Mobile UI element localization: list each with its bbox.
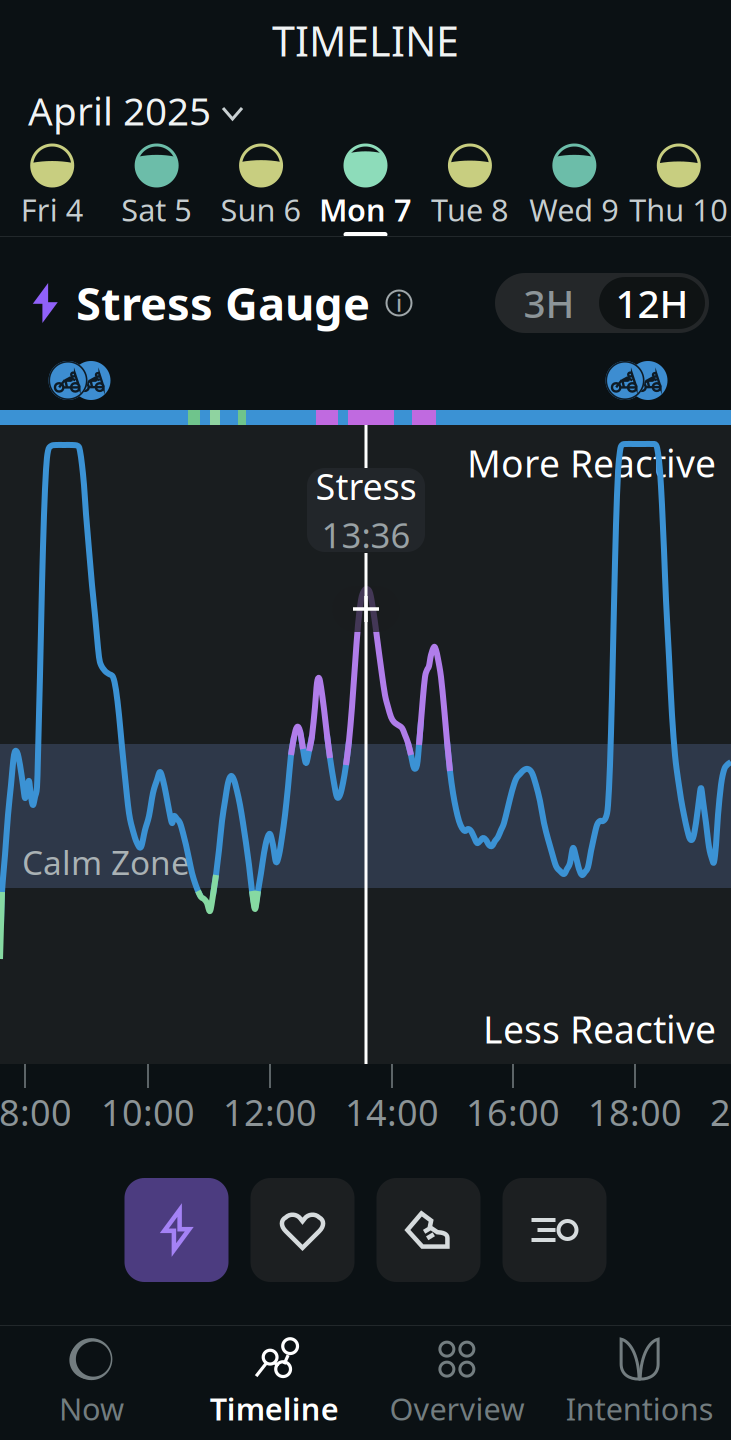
staticText: TIMELINE <box>272 13 459 68</box>
staticText: Less Reactive <box>483 1004 716 1054</box>
staticText: Thu 10 <box>629 189 728 230</box>
button[interactable]: Thu 10 <box>627 133 731 243</box>
button[interactable]: Stress <box>124 1178 228 1282</box>
button[interactable]: Overview <box>365 1337 548 1429</box>
staticText: Intentions <box>566 1388 714 1429</box>
staticText: 20:00 <box>710 1088 731 1136</box>
staticText: Calm Zone <box>22 840 190 884</box>
staticText: Overview <box>389 1388 524 1429</box>
staticText: 12H <box>615 277 688 329</box>
staticText: Stress Gauge <box>76 273 370 333</box>
button[interactable]: 12H <box>599 277 705 329</box>
staticText: 12:00 <box>223 1088 317 1136</box>
button[interactable]: April 2025 <box>28 88 242 132</box>
button[interactable]: 3H <box>499 277 599 329</box>
button[interactable]: Intentions <box>548 1337 731 1429</box>
staticText: Fri 4 <box>21 189 84 230</box>
staticText: i <box>396 288 402 318</box>
staticText: April 2025 <box>28 85 211 136</box>
staticText: More Reactive <box>467 438 716 488</box>
staticText: Wed 9 <box>529 189 619 230</box>
button[interactable]: Fri 4 <box>0 133 104 243</box>
staticText: 16:00 <box>466 1088 560 1136</box>
button[interactable]: Sun 6 <box>209 133 313 243</box>
button[interactable]: Steps <box>376 1178 480 1282</box>
button[interactable]: Wed 9 <box>522 133 626 243</box>
staticText: Stress <box>315 462 416 510</box>
button[interactable]: Tue 8 <box>418 133 522 243</box>
staticText: Now <box>59 1388 124 1429</box>
staticText: Timeline <box>210 1388 339 1429</box>
button[interactable]: Sat 5 <box>104 133 209 243</box>
staticText: Sun 6 <box>221 189 302 230</box>
button[interactable]: About Stress Gauge <box>382 286 416 320</box>
button[interactable]: Timeline <box>183 1337 366 1429</box>
staticText: 10:00 <box>101 1088 195 1136</box>
staticText: 18:00 <box>588 1088 682 1136</box>
staticText: Tue 8 <box>431 189 509 230</box>
button[interactable]: Now <box>0 1337 183 1429</box>
button[interactable]: Heart rate <box>250 1178 354 1282</box>
staticText: 08:00 <box>0 1088 72 1136</box>
staticText: 13:36 <box>321 512 410 558</box>
button[interactable]: Sleep <box>502 1178 606 1282</box>
staticText: 14:00 <box>345 1088 439 1136</box>
staticText: Mon 7 <box>319 189 412 230</box>
staticText: 3H <box>523 277 574 329</box>
button[interactable]: Mon 7 <box>313 133 418 243</box>
staticText: Sat 5 <box>121 189 192 230</box>
